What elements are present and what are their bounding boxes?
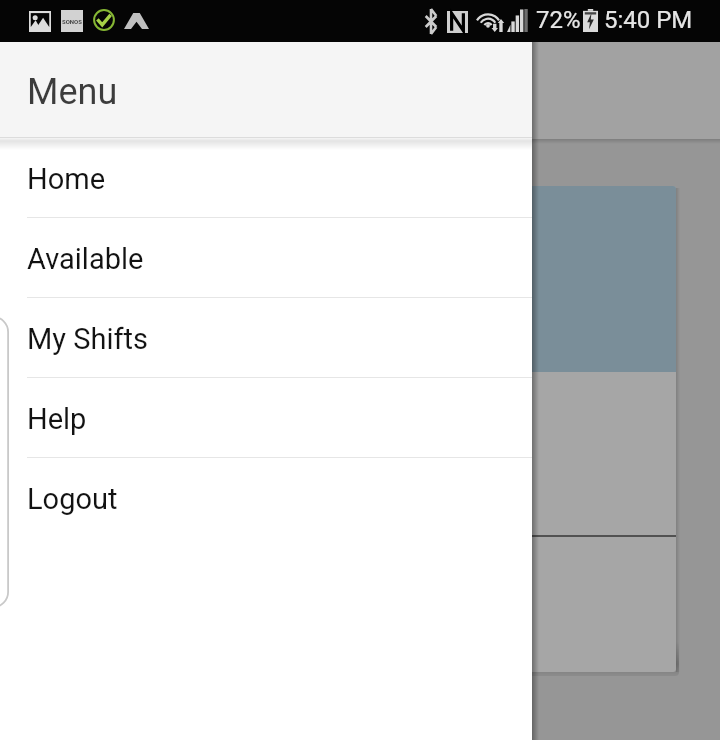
button[interactable]: Close navigation drawer bbox=[532, 0, 720, 740]
staticText: SONOS bbox=[62, 18, 82, 25]
staticText: Help bbox=[27, 402, 87, 436]
button[interactable]: My Shifts bbox=[0, 298, 532, 378]
staticText: Logout bbox=[27, 482, 118, 516]
staticText: Menu bbox=[27, 71, 118, 113]
staticText: My Shifts bbox=[27, 322, 149, 356]
button[interactable]: Help bbox=[0, 378, 532, 458]
staticText: Available bbox=[27, 242, 144, 276]
button[interactable]: Available bbox=[0, 218, 532, 298]
staticText: 5:40 PM bbox=[604, 6, 693, 34]
button[interactable]: Home bbox=[0, 138, 532, 218]
button[interactable]: Logout bbox=[0, 458, 532, 538]
staticText: 72% bbox=[536, 6, 581, 34]
staticText: Home bbox=[27, 162, 106, 196]
